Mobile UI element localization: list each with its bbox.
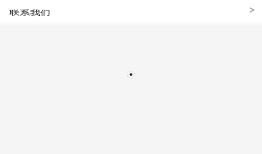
staticText: 联系我们 (9, 9, 51, 17)
button[interactable]: 联系我们 (0, 0, 262, 26)
other: Open 联系我们 (246, 4, 258, 16)
other: Loading (0, 0, 262, 154)
